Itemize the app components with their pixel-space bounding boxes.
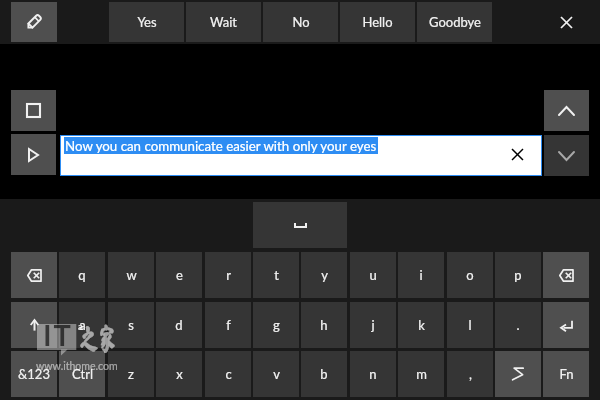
button[interactable]: m [398,351,444,397]
staticText: g [273,317,280,333]
button[interactable]: e [156,252,202,298]
button[interactable]: Handwriting [495,351,541,397]
button[interactable]: w [108,252,154,298]
staticText: a [79,317,86,333]
staticText: c [225,366,232,382]
staticText: 之家 [79,324,116,354]
button[interactable]: Yes [109,2,184,42]
staticText: Goodbye [429,14,481,30]
button[interactable]: Close [544,2,588,42]
staticText: Ctrl [72,366,93,382]
staticText: f [226,317,231,333]
button[interactable]: Goodbye [417,2,492,42]
button[interactable]: y [301,252,347,298]
button[interactable]: k [398,302,444,348]
button[interactable]: u [350,252,396,298]
staticText: j [371,317,375,333]
button[interactable]: Play [11,134,56,175]
staticText: t [274,267,279,283]
staticText: d [175,317,183,333]
staticText: b [320,366,328,382]
staticText: IT [43,317,73,352]
button[interactable]: h [301,302,347,348]
staticText: . [516,317,520,333]
button[interactable]: Space [253,202,347,248]
button[interactable]: g [253,302,299,348]
button[interactable]: j [350,302,396,348]
button[interactable]: No [263,2,338,42]
staticText: y [321,267,328,283]
staticText: m [416,366,427,382]
button[interactable]: Scroll up [544,90,589,131]
button[interactable]: o [447,252,493,298]
staticText: x [176,366,183,382]
staticText: o [466,267,474,283]
button[interactable]: Edit [11,2,57,42]
staticText: Yes [137,14,157,30]
staticText: u [369,267,377,283]
staticText: v [273,366,280,382]
button[interactable]: r [205,252,251,298]
staticText: k [418,317,425,333]
button[interactable]: z [108,351,154,397]
button[interactable]: f [205,302,251,348]
button[interactable]: d [156,302,202,348]
staticText: Wait [210,14,237,30]
staticText: No [292,14,310,30]
staticText: i [419,267,423,283]
button[interactable]: v [253,351,299,397]
button[interactable]: s [108,302,154,348]
button[interactable]: Clear text [497,135,537,174]
button[interactable]: Ctrl [59,351,105,397]
button[interactable]: . [495,302,541,348]
staticText: s [128,317,134,333]
staticText: z [128,366,134,382]
button[interactable]: Scroll down [544,135,589,176]
button[interactable]: a [59,302,105,348]
staticText: e [176,267,183,283]
button[interactable]: p [495,252,541,298]
button[interactable]: Hello [340,2,415,42]
staticText: www.ithome.com [36,359,119,372]
staticText: a [78,320,83,332]
staticText: Now you can communicate easier with only… [65,138,377,154]
button[interactable]: Shift [11,302,57,348]
button[interactable]: Enter [543,302,589,348]
button[interactable]: Fn [543,351,589,397]
staticText: Hello [362,14,393,30]
button[interactable]: Stop [11,90,56,131]
button[interactable]: i [398,252,444,298]
button[interactable]: &123 [11,351,57,397]
staticText: Fn [559,366,574,382]
staticText: w [126,267,137,283]
staticText: r [226,267,231,283]
button[interactable]: , [447,351,493,397]
button[interactable]: Wait [186,2,261,42]
staticText: h [320,317,328,333]
button[interactable]: Backspace [11,252,57,298]
button[interactable]: b [301,351,347,397]
staticText: l [468,317,472,333]
staticText: , [469,366,472,382]
staticText: q [78,267,86,283]
button[interactable]: x [156,351,202,397]
button[interactable]: q [59,252,105,298]
button[interactable]: Backspace [543,252,589,298]
button[interactable]: n [350,351,396,397]
button[interactable]: c [205,351,251,397]
staticText: n [369,366,377,382]
staticText: &123 [18,366,50,382]
button[interactable]: l [447,302,493,348]
button[interactable]: t [253,252,299,298]
staticText: p [514,267,522,283]
